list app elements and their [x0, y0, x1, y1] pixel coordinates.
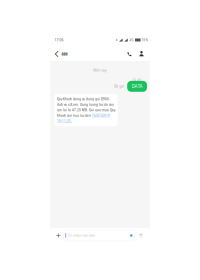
button[interactable]: Contact info — [135, 47, 147, 61]
staticText: 16:40 — [132, 78, 141, 82]
staticText: 10:11:25. — [57, 119, 72, 123]
staticText: 4G — [129, 38, 133, 42]
staticText: 76% — [141, 38, 147, 42]
staticText: 16/07/2019 — [92, 113, 110, 117]
staticText: Quy Khach dang su dung goi D900- — [57, 97, 110, 101]
button[interactable]: Message field — [63, 230, 134, 241]
staticText: 17:06 — [54, 38, 63, 42]
staticText: Khach con huu luc den — [57, 113, 92, 117]
button[interactable]: Back — [52, 47, 61, 61]
staticText: dich vu ezCom. Dung luong toc do cao — [57, 102, 114, 106]
button[interactable]: Call — [123, 47, 135, 61]
button[interactable]: Attach — [53, 228, 63, 243]
staticText: 888 — [61, 51, 67, 57]
staticText: Hôm nay — [93, 68, 107, 72]
staticText: Đã gửi — [114, 84, 124, 88]
button[interactable]: Send — [134, 229, 147, 242]
staticText: Tin nhắn văn bản — [67, 233, 95, 238]
staticText: con lai la 47.20 MB. Goi cuoc mua Quy — [57, 108, 115, 112]
staticText: DATA — [132, 83, 143, 89]
